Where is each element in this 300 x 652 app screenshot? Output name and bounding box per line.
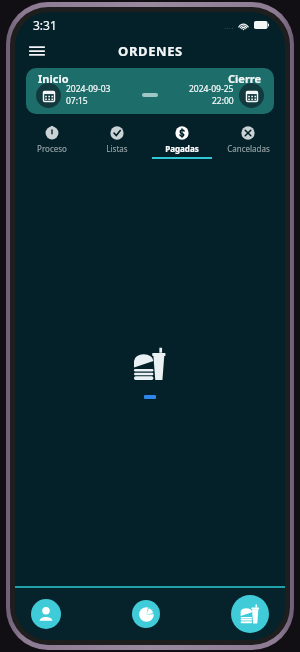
button[interactable]: Orders xyxy=(231,595,269,633)
button[interactable]: Reports xyxy=(132,600,160,628)
staticText: Cierre xyxy=(228,71,262,86)
button[interactable]: Select end date xyxy=(239,83,264,108)
staticText: Pagadas xyxy=(165,143,199,154)
button[interactable]: Pagadas xyxy=(149,124,215,159)
button[interactable]: Open navigation menu xyxy=(23,38,51,64)
button[interactable]: Select start date xyxy=(36,83,61,108)
staticText: 2024-09-03 xyxy=(66,83,111,95)
staticText: Listas xyxy=(106,143,128,154)
staticText: 22:00 xyxy=(212,95,234,107)
staticText: 2024-09-25 xyxy=(189,83,234,95)
staticText: ORDENES xyxy=(118,42,183,60)
staticText: .... xyxy=(224,19,234,31)
staticText: Inicio xyxy=(38,71,69,86)
button[interactable]: Canceladas xyxy=(215,124,281,159)
staticText: Canceladas xyxy=(227,143,270,154)
staticText: 3:31 xyxy=(33,17,57,33)
button[interactable]: Listas xyxy=(84,124,149,159)
staticText: Proceso xyxy=(37,143,67,154)
staticText: 07:15 xyxy=(66,95,88,107)
button[interactable]: Profile xyxy=(31,599,61,629)
button[interactable]: Proceso xyxy=(19,124,84,159)
